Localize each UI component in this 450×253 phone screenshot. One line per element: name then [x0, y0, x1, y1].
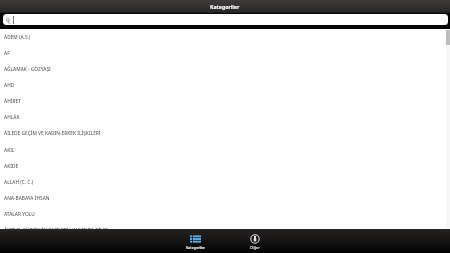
button[interactable]: AHD [0, 77, 450, 93]
staticText: ATALAR YOLU [4, 211, 35, 218]
button[interactable]: AHLÂK [0, 109, 450, 125]
staticText: AHD [4, 82, 15, 89]
button[interactable]: Diğer [225, 229, 284, 253]
staticText: ÂDEM (A.S.) [4, 34, 31, 41]
staticText: ÂİLEDE GEÇİM VE KADIN-ERKEK İLİŞKİLERİ [4, 130, 101, 137]
staticText: AĞLAMAK - GÖZYAŞI [4, 66, 51, 73]
button[interactable]: ÂHİRET [0, 93, 450, 109]
button[interactable]: ÂİLEDE GEÇİM VE KADIN-ERKEK İLİŞKİLERİ [0, 125, 450, 141]
button[interactable]: Search [3, 14, 448, 25]
staticText: ÂYET-EL KÜRSÎ'NİN FAZİLETİ HAKKINDA BİLG… [4, 227, 108, 234]
staticText: Kategoriler [186, 245, 205, 250]
button[interactable]: ÂDEM (A.S.) [0, 29, 450, 45]
staticText: ALLAH (C. C.) [4, 179, 34, 186]
staticText: Diğer [250, 245, 260, 250]
staticText: Kategoriler [210, 3, 240, 10]
staticText: AKIL [4, 147, 15, 154]
staticText: ANA-BABAYA İHSAN [4, 195, 50, 202]
staticText: AKİDE [4, 163, 19, 170]
staticText: AHLÂK [4, 114, 20, 121]
button[interactable]: ATALAR YOLU [0, 206, 450, 222]
button[interactable]: Kategoriler [166, 229, 225, 253]
button[interactable]: ÂYET-EL KÜRSÎ'NİN FAZİLETİ HAKKINDA BİLG… [0, 222, 450, 238]
button[interactable]: AĞLAMAK - GÖZYAŞI [0, 61, 450, 77]
button[interactable]: AKİDE [0, 158, 450, 174]
button[interactable]: ALLAH (C. C.) [0, 174, 450, 190]
button[interactable]: AF [0, 45, 450, 61]
button[interactable]: ANA-BABAYA İHSAN [0, 190, 450, 206]
staticText: AF [4, 50, 10, 57]
staticText: ÂHİRET [4, 98, 21, 105]
button[interactable]: AKIL [0, 142, 450, 158]
